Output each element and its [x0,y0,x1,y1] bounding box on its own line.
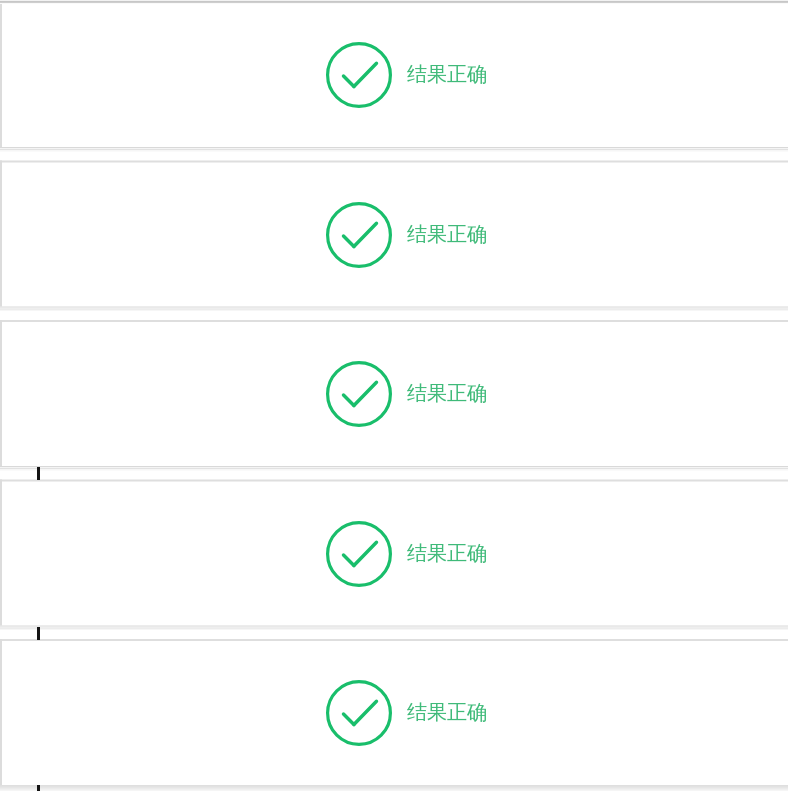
button[interactable]: Correct [0,639,788,785]
staticText: 结果正确 [407,541,487,566]
button[interactable]: Correct [0,320,788,466]
staticText: 结果正确 [407,222,487,247]
button[interactable]: Correct [0,1,788,147]
staticText: 结果正确 [407,62,487,87]
other: Correct [326,680,392,746]
staticText: 结果正确 [407,700,487,725]
staticText: 结果正确 [407,381,487,406]
button[interactable]: Correct [0,480,788,626]
other: Correct [326,521,392,587]
other: Correct [326,361,392,427]
button[interactable]: Correct [0,161,788,307]
other: Correct [326,42,392,108]
other: Correct [326,202,392,268]
